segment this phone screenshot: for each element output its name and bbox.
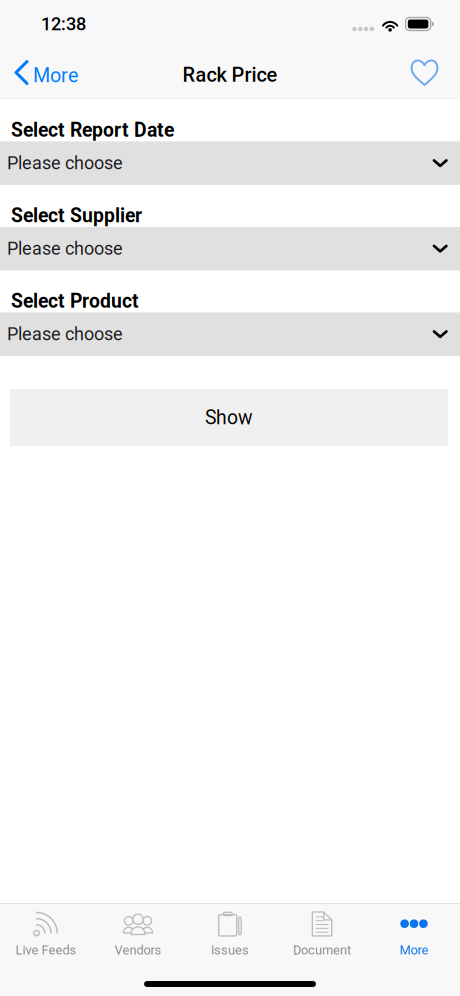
staticText: More — [33, 64, 78, 87]
staticText: Vendors — [114, 943, 161, 958]
button[interactable]: Please choose — [0, 141, 460, 185]
button[interactable]: Please choose — [0, 227, 460, 270]
staticText: Issues — [211, 943, 249, 958]
button[interactable]: Issues — [184, 904, 276, 962]
staticText: Please choose — [7, 324, 123, 345]
staticText: Please choose — [7, 153, 123, 174]
button[interactable]: More — [368, 904, 460, 962]
staticText: Select Supplier — [11, 204, 142, 227]
staticText: Select Product — [11, 290, 139, 312]
button[interactable]: Document — [276, 904, 368, 962]
staticText: Document — [293, 943, 351, 958]
staticText: 12:38 — [41, 13, 86, 35]
button[interactable]: Vendors — [92, 904, 184, 962]
button[interactable]: Live Feeds — [0, 904, 92, 962]
button[interactable]: Show — [10, 389, 448, 446]
button[interactable]: Please choose — [0, 312, 460, 356]
staticText: Select Report Date — [11, 119, 174, 141]
button[interactable]: More — [0, 48, 88, 98]
button[interactable]: Favorite — [400, 48, 460, 98]
staticText: Please choose — [7, 238, 123, 259]
staticText: Show — [205, 406, 253, 429]
staticText: Rack Price — [182, 63, 277, 87]
staticText: More — [399, 943, 428, 958]
staticText: Live Feeds — [15, 943, 76, 958]
